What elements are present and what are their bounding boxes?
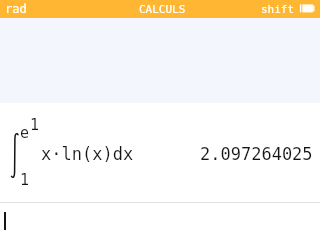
staticText: 2.097264025: [200, 144, 313, 164]
staticText: 1: [30, 116, 40, 133]
staticText: e: [20, 124, 30, 141]
staticText: shift: [261, 3, 295, 16]
button[interactable]: rad: [0, 0, 34, 18]
staticText: 1: [20, 171, 30, 188]
other: Battery: [299, 4, 315, 13]
staticText: CALCULS: [139, 3, 186, 16]
button[interactable]: [0, 203, 320, 240]
button[interactable]: shift: [257, 0, 297, 18]
staticText: x·ln(x)dx: [41, 144, 134, 164]
button[interactable]: CALCULS: [132, 0, 190, 18]
staticText: rad: [5, 2, 27, 16]
button[interactable]: e: [0, 103, 320, 202]
